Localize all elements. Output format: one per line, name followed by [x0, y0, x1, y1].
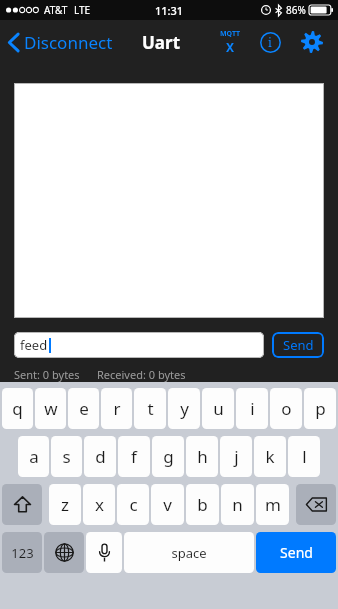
staticText: k [265, 445, 275, 468]
button[interactable]: MQTT disabled [210, 22, 250, 62]
button[interactable]: Info [250, 22, 290, 62]
button[interactable]: s [51, 436, 82, 477]
staticText: o [281, 397, 292, 420]
staticText: Send [280, 543, 313, 562]
staticText: h [197, 445, 208, 468]
staticText: feed [20, 336, 48, 354]
staticText: i [250, 397, 255, 420]
button[interactable]: v [151, 484, 184, 525]
staticText: v [163, 493, 172, 516]
button[interactable]: q [2, 388, 33, 429]
staticText: m [265, 493, 281, 516]
staticText: w [44, 397, 58, 420]
staticText: q [12, 397, 23, 420]
button[interactable]: w [35, 388, 66, 429]
button[interactable]: k [254, 436, 286, 477]
button[interactable]: y [168, 388, 200, 429]
staticText: LTE [74, 3, 91, 17]
button[interactable]: g [152, 436, 184, 477]
button[interactable]: c [117, 484, 149, 525]
staticText: MQTT [220, 29, 241, 39]
button[interactable]: Switch keyboard [44, 532, 84, 573]
button[interactable]: Backspace [296, 484, 336, 525]
button[interactable]: h [186, 436, 218, 477]
staticText: r [113, 397, 121, 420]
button[interactable]: l [288, 436, 320, 477]
staticText: s [62, 445, 71, 468]
button[interactable]: z [49, 484, 81, 525]
staticText: Sent: 0 bytes [14, 367, 80, 382]
button[interactable]: d [84, 436, 116, 477]
staticText: c [129, 493, 138, 516]
button[interactable]: t [134, 388, 166, 429]
staticText: x [95, 493, 104, 516]
staticText: 86% [286, 3, 306, 17]
button[interactable]: Settings [290, 20, 334, 64]
button[interactable]: Disconnect [0, 25, 121, 60]
button[interactable]: m [256, 484, 289, 525]
button[interactable]: j [220, 436, 252, 477]
button[interactable]: space [124, 532, 254, 573]
button[interactable]: i [236, 388, 268, 429]
staticText: X [226, 39, 235, 55]
button[interactable]: u [202, 388, 234, 429]
button[interactable]: n [221, 484, 254, 525]
button[interactable]: Send [272, 332, 324, 358]
staticText: Send [283, 336, 314, 354]
button[interactable]: e [68, 388, 99, 429]
button[interactable]: p [304, 388, 336, 429]
button[interactable]: Shift [2, 484, 42, 525]
button[interactable]: Dictation [86, 532, 122, 573]
staticText: j [234, 445, 239, 468]
button[interactable]: feed [14, 332, 264, 358]
button[interactable]: Send [256, 532, 336, 573]
staticText: l [302, 445, 307, 468]
staticText: e [79, 397, 89, 420]
staticText: Uart [142, 31, 181, 54]
button[interactable]: x [83, 484, 115, 525]
button[interactable]: f [118, 436, 150, 477]
staticText: y [180, 397, 189, 420]
button[interactable]: a [18, 436, 49, 477]
staticText: 123 [11, 544, 34, 562]
button[interactable]: b [186, 484, 219, 525]
staticText: a [29, 445, 39, 468]
staticText: d [95, 445, 106, 468]
staticText: AT&T [44, 3, 68, 17]
staticText: z [61, 493, 69, 516]
staticText: 11:31 [155, 3, 184, 18]
staticText: i [268, 34, 272, 50]
staticText: b [197, 493, 208, 516]
staticText: t [147, 397, 154, 420]
button[interactable]: o [270, 388, 302, 429]
staticText: n [232, 493, 243, 516]
staticText: g [163, 445, 174, 468]
staticText: Disconnect [24, 31, 113, 54]
staticText: p [315, 397, 326, 420]
staticText: f [131, 445, 137, 468]
button[interactable] [14, 83, 324, 318]
staticText: u [213, 397, 224, 420]
button[interactable]: 123 [2, 532, 42, 573]
staticText: space [171, 544, 207, 562]
button[interactable]: r [101, 388, 132, 429]
staticText: Received: 0 bytes [97, 367, 186, 382]
